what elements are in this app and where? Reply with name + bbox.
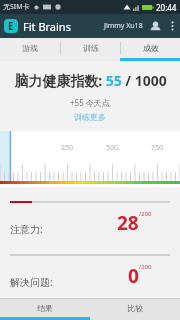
staticText: 注意力: [10,222,43,236]
staticText: /200 [139,210,152,218]
button[interactable]: 成效 [121,38,180,58]
button[interactable]: 注意力: [10,210,170,236]
staticText: 游戏 [22,43,38,53]
button[interactable]: 比较 [90,299,180,317]
staticText: 0 [128,263,139,289]
staticText: 比较 [127,303,143,313]
staticText: +55 今天点 [70,97,110,108]
button[interactable]: More options [166,14,178,38]
button[interactable]: 训练更多 [70,111,110,123]
staticText: 结果 [37,303,53,313]
staticText: 500 [106,143,119,153]
button[interactable]: 结果 [0,299,90,317]
button[interactable]: Profile avatar [147,18,163,34]
button[interactable]: 解决问题: [10,263,170,289]
staticText: 训练更多 [74,112,106,122]
staticText: /200 [139,263,152,271]
staticText: 解决问题: [10,275,53,289]
staticText: 28 [117,210,139,236]
staticText: Fit Brains [23,19,71,34]
staticText: E [8,19,14,33]
staticText: 无SIM卡 [3,2,30,12]
staticText: 750 [151,143,164,153]
staticText: 250 [61,143,74,153]
staticText: 成效 [143,43,159,53]
button[interactable]: 游戏 [0,38,60,58]
staticText: 脑力健康指数: 55 / 1000 [14,71,167,90]
staticText: Jimmy Xu18 [104,21,143,31]
staticText: 20:44 [156,2,177,13]
button[interactable]: 训练 [61,38,120,58]
staticText: 训练 [83,43,99,53]
